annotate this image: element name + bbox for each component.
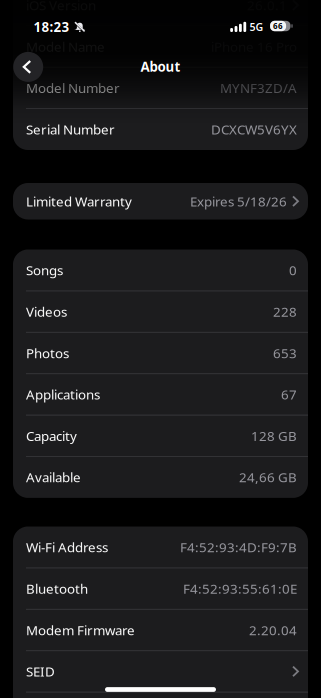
staticText: Modem Firmware xyxy=(26,621,135,639)
staticText: DCXCW5V6YX xyxy=(211,120,297,138)
staticText: Applications xyxy=(26,385,100,403)
button[interactable]: Limited Warranty xyxy=(13,183,308,219)
staticText: Expires 5/18/26 xyxy=(190,192,287,210)
staticText: Model Name xyxy=(26,38,105,55)
button[interactable]: iOS Version xyxy=(13,0,308,26)
staticText: SEID xyxy=(26,662,55,680)
staticText: Available xyxy=(26,468,81,486)
staticText: Serial Number xyxy=(26,120,115,138)
staticText: Bluetooth xyxy=(26,580,88,597)
staticText: F4:52:93:4D:F9:7B xyxy=(180,538,297,556)
staticText: 0 xyxy=(289,261,297,279)
staticText: 18:23 xyxy=(33,18,69,36)
staticText: 228 xyxy=(273,303,297,320)
staticText: Limited Warranty xyxy=(26,192,132,210)
staticText: Photos xyxy=(26,344,69,362)
staticText: iOS Version xyxy=(26,0,96,14)
staticText: 653 xyxy=(273,344,297,362)
button[interactable]: SEID xyxy=(13,651,308,692)
staticText: Songs xyxy=(26,261,63,279)
staticText: 2.20.04 xyxy=(249,621,297,639)
staticText: 67 xyxy=(281,385,297,403)
button[interactable]: Back xyxy=(13,52,43,82)
staticText: Videos xyxy=(26,303,67,320)
staticText: 66 xyxy=(273,21,283,31)
staticText: Wi-Fi Address xyxy=(26,538,108,556)
staticText: Capacity xyxy=(26,427,77,445)
staticText: 5G xyxy=(249,20,263,34)
staticText: 128 GB xyxy=(251,427,297,445)
staticText: F4:52:93:55:61:0E xyxy=(183,580,297,597)
staticText: 24,66 GB xyxy=(239,468,297,486)
staticText: About xyxy=(140,58,180,75)
staticText: MYNF3ZD/A xyxy=(220,79,297,97)
staticText: Model Number xyxy=(26,79,120,97)
